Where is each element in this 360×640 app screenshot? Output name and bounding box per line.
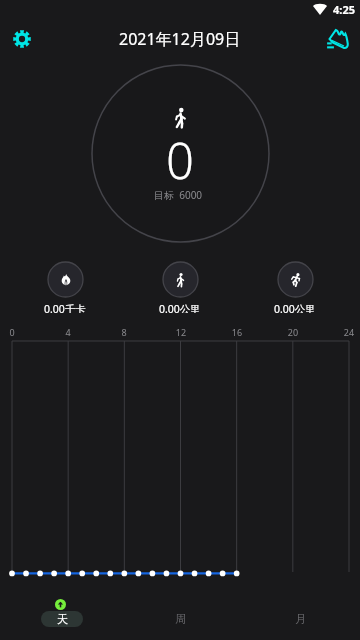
staticText: 8 [114, 326, 134, 338]
button[interactable]: 天 [41, 611, 83, 627]
staticText: 0.00千卡 [44, 302, 86, 313]
staticText: 20 [283, 326, 303, 338]
button[interactable]: 0.00千卡 [27, 261, 103, 313]
staticText: 0.00公里 [274, 302, 316, 313]
staticText: 16 [227, 326, 247, 338]
staticText: 周 [175, 612, 186, 626]
staticText: 目标 6000 [154, 188, 203, 202]
button[interactable]: Exercise [324, 26, 350, 52]
staticText: 4:25 [333, 2, 355, 17]
staticText: 2021年12月09日 [119, 28, 241, 50]
staticText: 12 [171, 326, 191, 338]
button[interactable]: 月 [275, 611, 325, 627]
staticText: 0 [166, 127, 194, 194]
button[interactable]: 0.00公里 [142, 261, 218, 313]
staticText: 0 [2, 326, 22, 338]
staticText: 0.00公里 [159, 302, 201, 313]
button[interactable]: 0.00公里 [257, 261, 333, 313]
button[interactable]: Settings [10, 27, 34, 51]
staticText: 天 [57, 612, 68, 626]
staticText: 24 [339, 326, 359, 338]
staticText: 4 [58, 326, 78, 338]
staticText: 月 [295, 612, 306, 626]
button[interactable]: 周 [155, 611, 205, 627]
